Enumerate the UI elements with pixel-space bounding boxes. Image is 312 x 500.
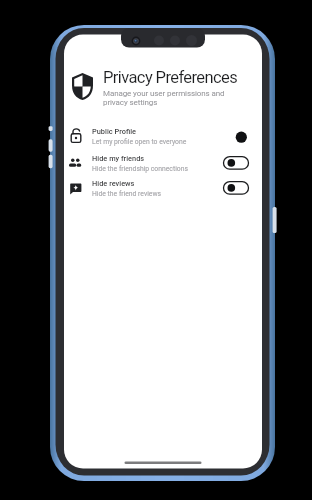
button[interactable] <box>223 180 249 195</box>
button[interactable] <box>223 128 249 143</box>
button[interactable] <box>223 155 249 170</box>
staticText: Public Profile <box>92 127 137 136</box>
staticText: Manage your user permissions and privacy… <box>103 89 225 107</box>
staticText: Hide the friendship connections <box>92 165 188 173</box>
staticText: Hide reviews <box>92 179 135 188</box>
staticText: Hide my friends <box>92 154 145 163</box>
button[interactable]: Hide my friends <box>64 151 262 176</box>
button[interactable]: Hide reviews <box>64 176 262 201</box>
staticText: Hide the friend reviews <box>92 190 162 198</box>
button[interactable]: Public Profile <box>64 124 262 149</box>
staticText: Privacy Preferences <box>103 68 238 87</box>
staticText: Let my profile open to everyone <box>92 138 187 146</box>
